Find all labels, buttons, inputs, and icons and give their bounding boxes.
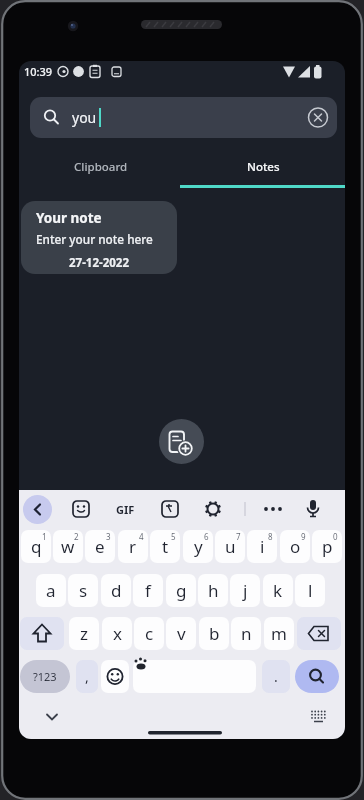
staticText: . — [274, 667, 278, 686]
button[interactable]: t — [150, 530, 180, 563]
button[interactable]: Clipboard — [19, 148, 182, 186]
staticText: y — [194, 535, 203, 558]
staticText: g — [176, 579, 187, 602]
staticText: l — [308, 579, 313, 602]
button[interactable] — [101, 660, 129, 693]
staticText: m — [271, 622, 287, 645]
button[interactable]: n — [231, 617, 261, 650]
staticText: z — [80, 622, 88, 645]
staticText: 3 — [106, 531, 111, 542]
staticText: 27-12-2022 — [69, 255, 129, 271]
staticText: f — [145, 579, 151, 602]
button[interactable]: r — [118, 530, 148, 563]
staticText: u — [225, 535, 236, 558]
staticText: k — [273, 579, 283, 602]
staticText: you — [72, 108, 97, 127]
staticText: , — [85, 667, 89, 686]
staticText: ?123 — [33, 669, 57, 684]
staticText: q — [31, 535, 42, 558]
button[interactable]: j — [230, 574, 260, 607]
staticText: 7 — [236, 531, 241, 542]
button[interactable]: q — [21, 530, 51, 563]
button[interactable]: l — [295, 574, 325, 607]
button[interactable] — [259, 495, 287, 523]
button[interactable] — [133, 660, 256, 693]
button[interactable]: v — [166, 617, 196, 650]
button[interactable]: y — [183, 530, 213, 563]
button[interactable] — [156, 495, 184, 523]
button[interactable]: i — [247, 530, 277, 563]
button[interactable] — [295, 660, 339, 693]
staticText: 5 — [171, 531, 176, 542]
staticText: d — [111, 579, 122, 602]
staticText: b — [209, 622, 220, 645]
button[interactable]: h — [198, 574, 228, 607]
button[interactable]: a — [36, 574, 66, 607]
button[interactable]: x — [102, 617, 132, 650]
staticText: Clipboard — [74, 159, 128, 175]
button[interactable]: . — [262, 660, 290, 693]
button[interactable]: ?123 — [20, 660, 70, 693]
button[interactable]: f — [133, 574, 163, 607]
staticText: 1 — [42, 531, 47, 542]
staticText: t — [162, 535, 169, 558]
button[interactable]: GIF — [111, 495, 139, 523]
staticText: 0 — [333, 531, 338, 542]
staticText: r — [129, 535, 137, 558]
staticText: Notes — [247, 159, 280, 175]
staticText: o — [290, 535, 301, 558]
button[interactable] — [299, 495, 327, 523]
button[interactable] — [304, 703, 332, 731]
staticText: p — [322, 535, 333, 558]
button[interactable] — [20, 617, 64, 650]
staticText: n — [241, 622, 252, 645]
staticText: Enter your note here — [36, 231, 153, 247]
staticText: Your note — [36, 209, 102, 227]
staticText: v — [177, 622, 186, 645]
staticText: 8 — [268, 531, 273, 542]
button[interactable]: o — [280, 530, 310, 563]
button[interactable]: c — [134, 617, 164, 650]
button[interactable]: , — [76, 660, 98, 693]
staticText: 6 — [204, 531, 209, 542]
staticText: h — [208, 579, 219, 602]
staticText: c — [145, 622, 154, 645]
button[interactable] — [159, 419, 204, 464]
staticText: GIF — [116, 502, 135, 517]
button[interactable]: p — [312, 530, 342, 563]
button[interactable]: k — [263, 574, 293, 607]
staticText: 9 — [301, 531, 306, 542]
button[interactable]: g — [166, 574, 196, 607]
staticText: 10:39 — [24, 64, 53, 79]
button[interactable]: e — [85, 530, 115, 563]
button[interactable]: Your note — [21, 201, 177, 274]
button[interactable] — [297, 617, 341, 650]
staticText: i — [260, 535, 265, 558]
staticText: x — [113, 622, 122, 645]
button[interactable] — [23, 495, 52, 524]
staticText: w — [61, 535, 75, 558]
staticText: s — [79, 579, 88, 602]
button[interactable]: z — [69, 617, 99, 650]
button[interactable]: b — [199, 617, 229, 650]
button[interactable] — [67, 495, 95, 523]
staticText: j — [243, 579, 248, 602]
button[interactable]: u — [215, 530, 245, 563]
button[interactable]: w — [53, 530, 83, 563]
staticText: a — [46, 579, 56, 602]
button[interactable] — [38, 703, 66, 731]
button[interactable] — [199, 495, 227, 523]
staticText: e — [95, 535, 105, 558]
button[interactable]: m — [264, 617, 294, 650]
button[interactable]: Notes — [182, 148, 345, 186]
staticText: 2 — [74, 531, 79, 542]
staticText: 4 — [139, 531, 144, 542]
button[interactable]: d — [101, 574, 131, 607]
button[interactable]: s — [68, 574, 98, 607]
button[interactable]: you — [30, 97, 337, 138]
